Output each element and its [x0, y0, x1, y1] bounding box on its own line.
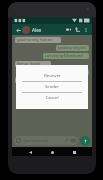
staticText: Receiver	[44, 73, 61, 79]
button[interactable]: Sender	[16, 82, 88, 92]
button[interactable]: Back	[26, 148, 34, 156]
staticText: good morning bro	[58, 46, 86, 50]
staticText: Sender	[45, 84, 59, 90]
button[interactable]: i am very well thanks and you	[43, 53, 89, 59]
button[interactable]: Home	[48, 148, 56, 156]
button[interactable]: Alex	[32, 27, 42, 33]
button[interactable]: Attach	[64, 138, 69, 143]
staticText: good morning, how are you?	[17, 38, 59, 42]
button[interactable]: Voice call	[73, 25, 82, 34]
staticText: i am very well thanks and you	[45, 54, 87, 58]
button[interactable]: Send voice message	[80, 136, 90, 146]
button[interactable]: fine too, thanks	[15, 61, 51, 67]
button[interactable]: good morning bro	[56, 45, 89, 51]
button[interactable]: good morning, how are you?	[15, 37, 61, 43]
button[interactable]: Receiver	[16, 71, 88, 81]
other: Emoji	[16, 138, 21, 143]
button[interactable]: More options	[82, 26, 90, 34]
staticText: nothing much	[17, 78, 39, 82]
button[interactable]: what are you doing today?	[46, 69, 89, 75]
button[interactable]: Cancel	[16, 93, 88, 103]
button[interactable]: Emoji	[14, 136, 78, 145]
button[interactable]: Contact photo	[22, 26, 30, 34]
button[interactable]: Back	[14, 26, 22, 34]
button[interactable]: nothing much	[15, 77, 45, 83]
button[interactable]: Camera	[71, 138, 76, 143]
button[interactable]: Recents	[70, 148, 78, 156]
staticText: Type a message	[23, 138, 49, 143]
staticText: fine too, thanks	[17, 62, 41, 66]
staticText: Cancel	[45, 95, 59, 101]
button[interactable]: Video call	[64, 25, 73, 34]
